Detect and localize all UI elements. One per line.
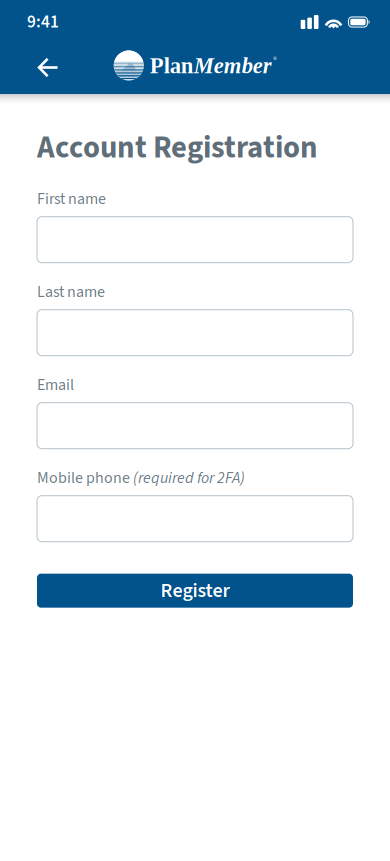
staticText: Last name — [37, 281, 105, 303]
button[interactable] — [37, 217, 353, 263]
staticText: Account Registration — [37, 126, 318, 170]
staticText: First name — [37, 188, 106, 210]
staticText: Member — [194, 53, 272, 78]
button[interactable] — [37, 403, 353, 449]
staticText: (required for 2FA) — [130, 467, 245, 489]
staticText: Register — [160, 576, 229, 605]
button[interactable]: Back — [26, 43, 70, 87]
staticText: Plan — [150, 53, 194, 78]
button[interactable]: Register — [37, 574, 353, 608]
staticText: ® — [273, 54, 276, 65]
staticText: 9:41 — [27, 10, 59, 34]
staticText: Email — [37, 374, 74, 396]
button[interactable] — [37, 310, 353, 356]
staticText: Mobile phone — [37, 467, 130, 489]
button[interactable] — [37, 496, 353, 542]
